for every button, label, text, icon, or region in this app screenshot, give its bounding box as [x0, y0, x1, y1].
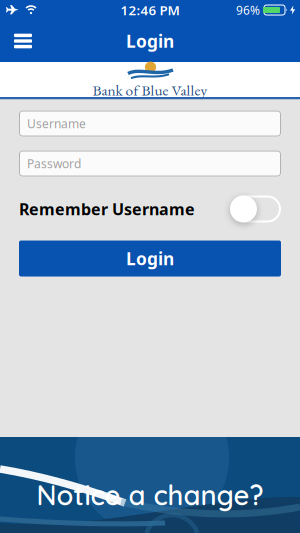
- staticText: Password: [27, 155, 81, 171]
- staticText: Remember Username: [19, 198, 195, 220]
- button[interactable]: Password: [19, 150, 281, 176]
- button[interactable]: Menu: [0, 21, 32, 61]
- button[interactable]: Notice a change?: [0, 437, 300, 533]
- staticText: Login: [126, 247, 174, 270]
- button[interactable]: Username: [19, 110, 281, 136]
- staticText: Bank of Blue Valley: [92, 80, 207, 100]
- staticText: 96%: [236, 2, 260, 18]
- staticText: Login: [126, 29, 174, 52]
- button[interactable]: Remember Username: [230, 195, 281, 222]
- staticText: Username: [27, 115, 86, 131]
- button[interactable]: Login: [19, 240, 281, 276]
- staticText: Notice a change?: [36, 478, 263, 512]
- staticText: 12:46 PM: [120, 1, 179, 19]
